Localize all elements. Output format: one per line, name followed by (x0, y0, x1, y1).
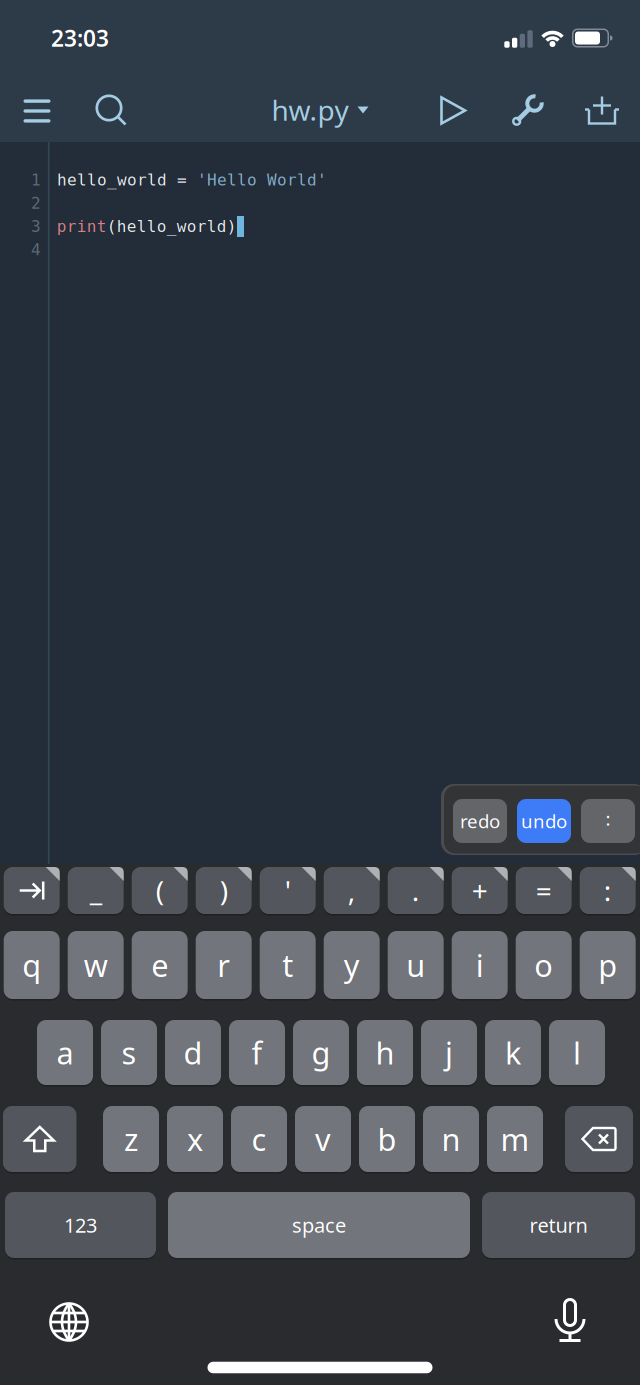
staticText: c (251, 1119, 266, 1159)
button[interactable]: p (580, 931, 636, 999)
button[interactable]: g (293, 1020, 349, 1085)
staticText: : (604, 872, 612, 909)
staticText: ) (220, 872, 228, 909)
button[interactable]: Shift (3, 1106, 76, 1172)
button[interactable]: . (388, 867, 444, 914)
staticText: h (375, 1032, 394, 1073)
staticText: w (84, 945, 108, 985)
button[interactable]: Tools (508, 90, 548, 130)
staticText: t (282, 945, 293, 985)
button[interactable]: = (516, 867, 572, 914)
button[interactable]: w (68, 931, 124, 999)
staticText: ' (285, 872, 291, 909)
button[interactable]: , (324, 867, 380, 914)
staticText: 1 (31, 171, 41, 189)
staticText: d (183, 1032, 202, 1073)
staticText: 2 (31, 194, 41, 212)
staticText: hello_world = (57, 171, 197, 189)
button[interactable]: t (260, 931, 316, 999)
staticText: 3 (31, 217, 41, 236)
staticText: a (56, 1032, 73, 1073)
button[interactable]: s (101, 1020, 157, 1085)
staticText: undo (521, 809, 567, 833)
button[interactable]: y (324, 931, 380, 999)
button[interactable]: Menu (17, 91, 57, 131)
button[interactable]: j (421, 1020, 477, 1085)
staticText: m (500, 1119, 529, 1159)
button[interactable]: Dictate (542, 1292, 598, 1348)
button[interactable]: ' (260, 867, 316, 914)
button[interactable]: e (132, 931, 188, 999)
button[interactable]: undo (517, 799, 571, 843)
staticText: : (605, 806, 610, 831)
staticText: print (57, 217, 107, 236)
button[interactable]: return (482, 1192, 635, 1258)
staticText: r (217, 945, 230, 985)
button[interactable]: Tab (4, 867, 60, 914)
staticText: g (311, 1032, 330, 1073)
staticText: b (377, 1119, 396, 1159)
button[interactable]: a (37, 1020, 93, 1085)
button[interactable]: ( (132, 867, 188, 914)
staticText: 4 (31, 241, 41, 259)
button[interactable]: Search (91, 90, 131, 130)
staticText: return (529, 1212, 587, 1238)
button[interactable]: x (167, 1106, 223, 1172)
button[interactable]: Delete (565, 1106, 633, 1172)
button[interactable]: space (168, 1192, 470, 1258)
staticText: space (292, 1212, 346, 1238)
staticText: (hello_world) (107, 217, 237, 236)
staticText: . (412, 872, 420, 909)
staticText: = (536, 872, 552, 909)
staticText: i (476, 945, 484, 985)
button[interactable]: redo (453, 799, 507, 843)
button[interactable]: o (516, 931, 572, 999)
button[interactable]: v (295, 1106, 351, 1172)
staticText: n (441, 1119, 460, 1159)
button[interactable]: New file (582, 90, 622, 130)
staticText: 23:03 (51, 23, 109, 53)
staticText: k (505, 1032, 521, 1073)
button[interactable]: Next keyboard (41, 1294, 97, 1350)
staticText: redo (460, 809, 500, 833)
button[interactable]: n (423, 1106, 479, 1172)
button[interactable]: q (4, 931, 60, 999)
button[interactable]: 123 (5, 1192, 156, 1258)
staticText: o (534, 945, 553, 985)
button[interactable]: d (165, 1020, 221, 1085)
staticText: s (121, 1032, 136, 1073)
button[interactable]: + (452, 867, 508, 914)
staticText: f (251, 1032, 262, 1073)
button[interactable]: u (388, 931, 444, 999)
button[interactable]: f (229, 1020, 285, 1085)
button[interactable]: b (359, 1106, 415, 1172)
staticText: ( (156, 872, 164, 909)
staticText: q (22, 945, 41, 985)
button[interactable]: ) (196, 867, 252, 914)
button[interactable]: m (487, 1106, 543, 1172)
staticText: z (124, 1119, 138, 1159)
staticText: _ (90, 872, 102, 909)
staticText: 123 (64, 1212, 97, 1238)
button[interactable]: i (452, 931, 508, 999)
button[interactable]: r (196, 931, 252, 999)
staticText: p (598, 945, 617, 985)
staticText: + (472, 872, 488, 909)
staticText: x (187, 1119, 203, 1159)
staticText: j (445, 1032, 453, 1073)
button[interactable]: _ (68, 867, 124, 914)
button[interactable]: h (357, 1020, 413, 1085)
staticText: y (344, 945, 360, 985)
button[interactable]: k (485, 1020, 541, 1085)
staticText: e (151, 945, 168, 985)
button[interactable]: c (231, 1106, 287, 1172)
button[interactable]: hw.py (271, 91, 368, 129)
button[interactable]: Run (433, 90, 473, 130)
button[interactable]: l (549, 1020, 605, 1085)
staticText: 'Hello World' (197, 171, 327, 189)
button[interactable]: : (580, 867, 636, 914)
staticText: l (573, 1032, 581, 1073)
button[interactable]: : (581, 799, 635, 843)
staticText: hw.py (271, 91, 348, 129)
button[interactable]: z (103, 1106, 159, 1172)
